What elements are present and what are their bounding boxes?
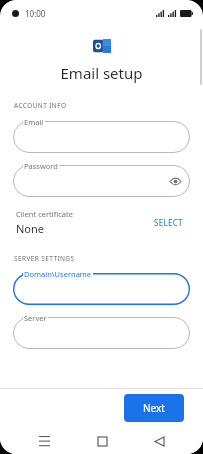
- button[interactable]: Email: [13, 121, 190, 153]
- button[interactable]: Domain\Username: [13, 273, 190, 305]
- button[interactable]: Server: [13, 317, 190, 349]
- button[interactable]: Home: [89, 428, 115, 454]
- button[interactable]: Show password: [168, 174, 182, 188]
- staticText: ACCOUNT INFO: [14, 101, 67, 110]
- button[interactable]: Recent apps: [31, 428, 57, 454]
- staticText: Password: [24, 161, 58, 171]
- staticText: None: [16, 221, 45, 236]
- staticText: Client certificate: [16, 209, 73, 219]
- staticText: Email setup: [0, 63, 203, 83]
- staticText: Server: [24, 313, 47, 323]
- staticText: SERVER SETTINGS: [14, 254, 75, 263]
- button[interactable]: Next: [124, 394, 184, 422]
- staticText: SELECT: [154, 217, 183, 228]
- staticText: Email: [24, 117, 44, 127]
- staticText: Next: [143, 401, 165, 415]
- staticText: Domain\Username: [24, 269, 92, 279]
- button[interactable]: Back: [146, 428, 172, 454]
- staticText: 10:00: [25, 8, 46, 19]
- button[interactable]: SELECT: [150, 214, 187, 231]
- button[interactable]: Password: [13, 165, 190, 197]
